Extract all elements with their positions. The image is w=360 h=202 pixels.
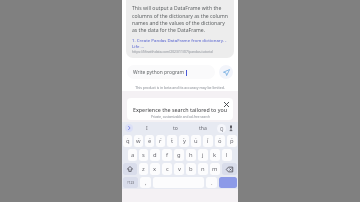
staticText: m — [212, 165, 218, 173]
staticText: u — [194, 137, 198, 145]
button[interactable]: s — [139, 149, 148, 161]
button[interactable]: q — [123, 135, 132, 147]
staticText: e — [148, 137, 152, 145]
button[interactable]: tha — [189, 122, 217, 134]
button[interactable]: g — [174, 149, 184, 161]
staticText: a — [131, 151, 135, 159]
staticText: l — [226, 151, 228, 159]
staticText: y — [183, 137, 186, 145]
staticText: g — [177, 151, 181, 159]
staticText: This will output a DataFrame with the co… — [132, 5, 228, 33]
staticText: This product is in beta and its accuracy… — [135, 85, 225, 90]
button[interactable]: o — [215, 135, 225, 147]
button[interactable]: . — [206, 177, 217, 188]
staticText: p — [230, 137, 234, 145]
staticText: z — [142, 165, 145, 173]
button[interactable]: y — [179, 135, 189, 147]
button[interactable]: p — [227, 135, 237, 147]
button[interactable]: This will output a DataFrame with the co… — [126, 0, 234, 58]
staticText: Private, customizable and ad-free search — [151, 115, 210, 119]
button[interactable]: u — [191, 135, 201, 147]
staticText: t — [171, 137, 174, 145]
button[interactable]: to — [161, 122, 189, 134]
button[interactable]: w — [134, 135, 143, 147]
button[interactable]: k — [210, 149, 220, 161]
button[interactable]: l — [222, 149, 232, 161]
staticText: 9 — [219, 136, 221, 139]
staticText: f — [166, 151, 168, 159]
button[interactable]: t — [167, 135, 177, 147]
staticText: 1. Create Pandas DataFrame from dictiona… — [132, 37, 228, 49]
button[interactable]: I — [133, 122, 161, 134]
staticText: 4 — [160, 136, 162, 139]
button[interactable]: Symbols — [123, 177, 138, 188]
staticText: Write python program — [133, 69, 185, 76]
staticText: s — [142, 151, 145, 159]
button[interactable]: i — [203, 135, 213, 147]
staticText: https://lifewithdata.com/2023/11/07/pand… — [132, 49, 213, 53]
button[interactable]: Shift — [123, 163, 137, 175]
staticText: x — [153, 165, 157, 173]
button[interactable]: Expand toolbar — [125, 124, 133, 132]
staticText: c — [166, 165, 169, 173]
staticText: o — [218, 137, 222, 145]
staticText: r — [159, 137, 162, 145]
staticText: 0 — [231, 136, 233, 139]
staticText: v — [178, 165, 181, 173]
staticText: , — [145, 179, 147, 187]
button[interactable]: Close — [222, 100, 230, 108]
staticText: k — [213, 151, 217, 159]
button[interactable]: r — [156, 135, 165, 147]
staticText: i — [207, 137, 209, 145]
staticText: Experience the search tailored to you — [133, 106, 228, 113]
button[interactable]: z — [139, 163, 148, 175]
button[interactable]: Experience the search tailored to you — [127, 98, 233, 120]
button[interactable]: Backspace — [222, 163, 237, 175]
button[interactable]: Send — [219, 65, 233, 79]
button[interactable]: d — [150, 149, 160, 161]
button[interactable]: Voice input — [227, 124, 235, 132]
staticText: d — [153, 151, 157, 159]
staticText: I — [146, 125, 148, 132]
button[interactable]: h — [186, 149, 196, 161]
button[interactable]: , — [140, 177, 151, 188]
staticText: 7 — [195, 136, 197, 139]
staticText: 8 — [207, 136, 209, 139]
staticText: tha — [199, 125, 207, 132]
staticText: b — [189, 165, 193, 173]
staticText: 6 — [183, 136, 185, 139]
button[interactable]: Write python program — [127, 65, 215, 79]
staticText: ?123 — [127, 180, 135, 185]
staticText: to — [173, 125, 178, 132]
button[interactable]: c — [162, 163, 172, 175]
button[interactable]: x — [150, 163, 160, 175]
button[interactable]: m — [210, 163, 220, 175]
button[interactable]: Enter — [219, 177, 237, 188]
staticText: w — [136, 137, 141, 145]
staticText: j — [202, 151, 204, 159]
staticText: 2 — [138, 136, 140, 139]
button[interactable]: a — [128, 149, 137, 161]
staticText: 1 — [127, 136, 129, 139]
button[interactable]: e — [145, 135, 154, 147]
button[interactable]: j — [198, 149, 208, 161]
staticText: n — [201, 165, 205, 173]
button[interactable]: f — [162, 149, 172, 161]
staticText: 3 — [149, 136, 151, 139]
staticText: 5 — [171, 136, 173, 139]
staticText: Q — [220, 126, 224, 132]
staticText: . — [211, 179, 213, 187]
staticText: h — [189, 151, 193, 159]
button[interactable]: n — [198, 163, 208, 175]
button[interactable]: Keyboard settings — [217, 124, 226, 133]
button[interactable]: b — [186, 163, 196, 175]
staticText: q — [126, 137, 130, 145]
button[interactable]: v — [174, 163, 184, 175]
